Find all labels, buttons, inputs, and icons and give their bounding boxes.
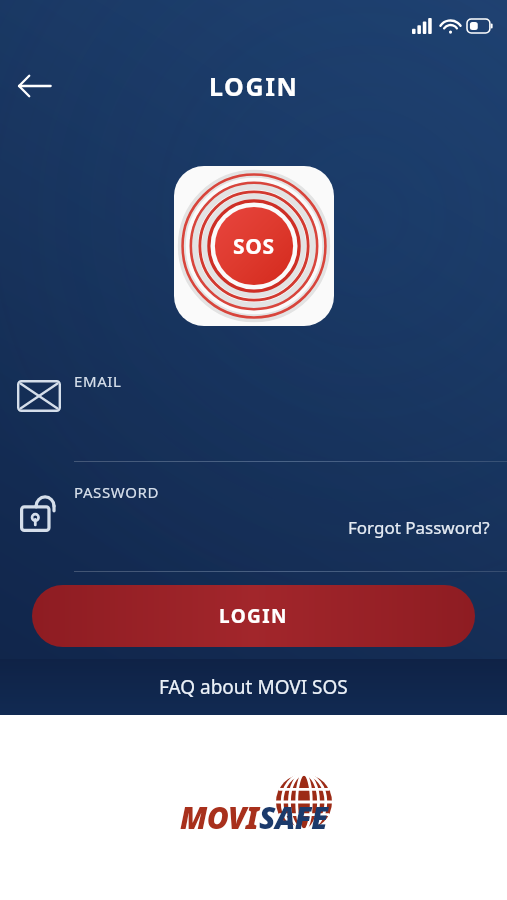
staticText: LOGIN (219, 603, 288, 629)
other: Password (20, 487, 58, 532)
button[interactable]: MOVISAFE (154, 772, 354, 844)
button[interactable]: Email (0, 350, 507, 462)
staticText: SAFE (259, 797, 328, 838)
staticText: EMAIL (74, 371, 122, 391)
button[interactable]: MOVI SOS logo (174, 166, 334, 326)
staticText: SOS (233, 232, 275, 261)
button[interactable]: LOGIN (32, 585, 475, 647)
other: Email (17, 380, 61, 412)
button[interactable]: Back (6, 58, 62, 114)
staticText: MOVI (180, 797, 259, 838)
button[interactable]: Forgot Password? (345, 514, 493, 541)
staticText: PASSWORD (74, 482, 159, 502)
staticText: LOGIN (209, 69, 299, 103)
button[interactable]: FAQ about MOVI SOS (0, 659, 507, 715)
staticText: FAQ about MOVI SOS (159, 674, 348, 700)
staticText: Forgot Password? (348, 516, 490, 539)
